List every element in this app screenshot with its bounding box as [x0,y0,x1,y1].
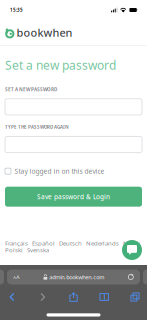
button[interactable]: ᴀA [7,269,140,284]
staticText: bookwhen [17,25,73,40]
button[interactable]: Share [62,291,84,302]
staticText: ᴀA [13,273,20,281]
staticText: Français Español Deutsch Nederlands Nors… [5,239,140,247]
button[interactable]: Support chat [122,240,142,260]
staticText: Polski Svenska [5,246,49,254]
button[interactable]: Polski Svenska [5,246,49,254]
button[interactable]: Save password & Login [5,187,142,207]
staticText: TYPE THE PASSWORD AGAIN [5,123,69,130]
staticText: Stay logged in on this device [14,167,104,176]
button[interactable]: Back [1,291,23,302]
button[interactable]: Stay logged in on this device [0,167,147,176]
button[interactable]: Bookmarks [93,291,115,302]
staticText: 15:35 [10,7,23,13]
button[interactable]: Français Español Deutsch Nederlands Nors… [5,239,140,247]
staticText: admin.bookwhen.com [49,273,104,281]
staticText: SET A NEW PASSWORD [5,85,57,93]
button[interactable]: Tabs [124,291,146,302]
staticText: Set a new password [5,57,116,73]
staticText: Save password & Login [37,192,110,201]
button[interactable]: Forward [32,291,54,302]
